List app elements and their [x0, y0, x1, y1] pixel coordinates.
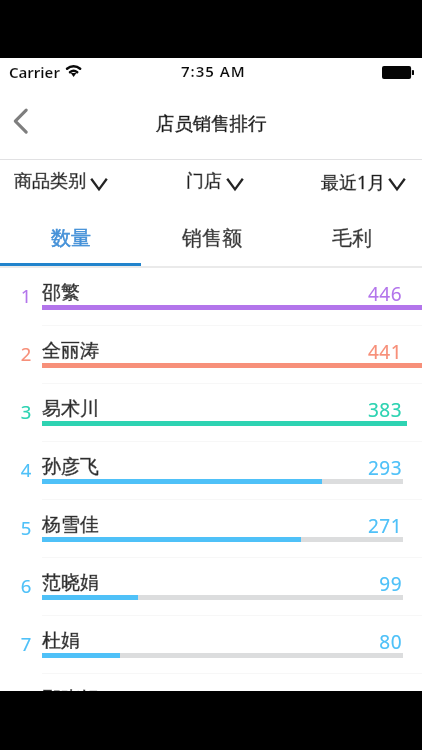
button[interactable]: 门店 — [180, 159, 249, 205]
staticText: 2 — [14, 341, 38, 366]
staticText: 商品类别 — [14, 170, 86, 193]
staticText: 80 — [293, 629, 402, 655]
staticText: 全丽涛 — [42, 339, 99, 363]
staticText: 441 — [293, 339, 402, 365]
staticText: 99 — [293, 571, 402, 597]
staticText: 数量 — [51, 226, 91, 251]
button[interactable]: 5 — [0, 499, 422, 557]
staticText: 最近1月 — [321, 170, 386, 195]
staticText: 7 — [14, 631, 38, 656]
staticText: 383 — [293, 397, 402, 423]
staticText: 7:35 AM — [181, 61, 246, 81]
button[interactable]: 8 — [0, 673, 422, 691]
staticText: 1 — [14, 283, 38, 308]
button[interactable]: 7 — [0, 615, 422, 673]
staticText: 杨雪佳 — [42, 513, 99, 537]
staticText: 邵繁 — [42, 281, 80, 305]
button[interactable]: 毛利 — [281, 205, 422, 266]
button[interactable]: Back — [0, 99, 46, 143]
staticText: 3 — [14, 399, 38, 424]
staticText: 店员销售排行 — [156, 112, 267, 135]
staticText: 5 — [14, 515, 38, 540]
staticText: Carrier — [9, 62, 60, 82]
staticText: 271 — [293, 513, 402, 539]
staticText: 范晓娟 — [42, 571, 99, 595]
button[interactable]: 2 — [0, 325, 422, 383]
button[interactable]: 6 — [0, 557, 422, 615]
button[interactable]: 数量 — [0, 205, 141, 266]
staticText: 易术川 — [42, 397, 99, 421]
staticText: 4 — [14, 457, 38, 482]
staticText: 销售额 — [182, 226, 242, 251]
button[interactable]: 4 — [0, 441, 422, 499]
button[interactable]: 商品类别 — [8, 159, 114, 205]
staticText: 邵晓娟 — [42, 687, 99, 691]
staticText: 毛利 — [332, 226, 372, 251]
button[interactable]: 最近1月 — [315, 159, 410, 205]
staticText: 293 — [293, 455, 402, 481]
staticText: 杜娟 — [42, 629, 80, 653]
button[interactable]: 销售额 — [141, 205, 282, 266]
button[interactable]: 1 — [0, 267, 422, 325]
staticText: 446 — [293, 281, 402, 307]
button[interactable]: 3 — [0, 383, 422, 441]
staticText: 孙彦飞 — [42, 455, 99, 479]
staticText: 门店 — [186, 170, 222, 193]
staticText: 6 — [14, 573, 38, 598]
